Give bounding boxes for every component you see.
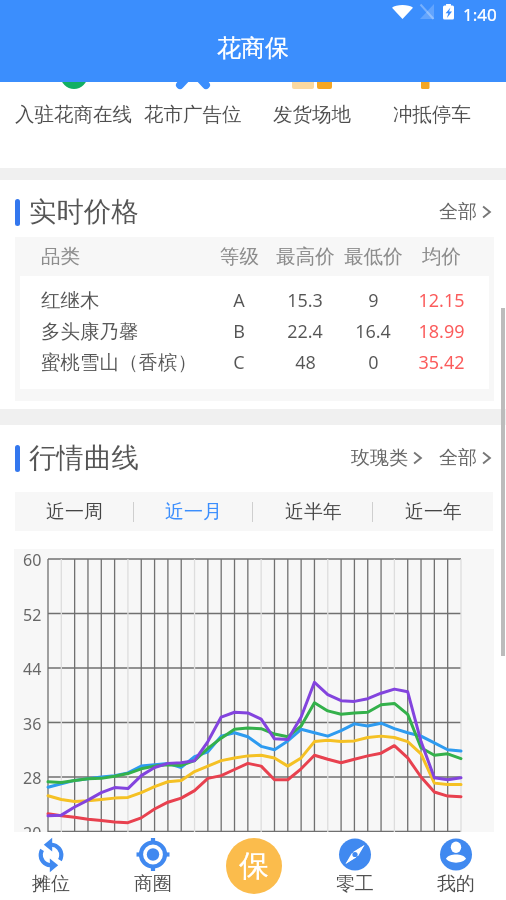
staticText: 最低价 <box>344 244 403 269</box>
staticText: 60 <box>23 549 42 569</box>
staticText: 均价 <box>422 244 461 269</box>
staticText: 红继木 <box>41 288 100 313</box>
staticText: 花商保 <box>217 33 289 63</box>
staticText: 22.4 <box>287 319 323 344</box>
button[interactable]: 近一周 <box>15 492 134 531</box>
button[interactable]: 入驻花商在线 <box>14 82 133 168</box>
button[interactable]: 玫瑰类 <box>351 440 422 476</box>
staticText: 近一年 <box>405 500 462 524</box>
staticText: 0 <box>368 350 379 375</box>
staticText: 近一月 <box>165 500 222 524</box>
button[interactable]: Gig work <box>304 832 405 900</box>
staticText: C <box>233 350 245 375</box>
button[interactable]: 全部 <box>439 194 491 230</box>
staticText: 保 <box>239 847 269 885</box>
staticText: 近一周 <box>46 500 103 524</box>
staticText: B <box>233 319 245 344</box>
staticText: 我的 <box>437 872 475 896</box>
staticText: 12.15 <box>418 288 465 313</box>
button[interactable]: 近一年 <box>373 492 493 531</box>
button[interactable]: 近半年 <box>253 492 373 531</box>
staticText: 等级 <box>220 244 259 269</box>
staticText: 多头康乃馨 <box>41 319 139 344</box>
staticText: A <box>233 288 245 313</box>
staticText: 48 <box>295 350 316 375</box>
staticText: 36 <box>23 713 42 733</box>
staticText: 玫瑰类 <box>351 446 408 470</box>
button[interactable]: 花市广告位 <box>133 82 252 168</box>
staticText: 近半年 <box>285 500 342 524</box>
button[interactable] <box>15 285 494 316</box>
staticText: 15.3 <box>287 288 323 313</box>
staticText: 1:40 <box>463 3 497 26</box>
button[interactable]: Business district <box>102 832 203 900</box>
staticText: 最高价 <box>276 244 335 269</box>
button[interactable]: 近一月 <box>134 492 253 531</box>
staticText: 全部 <box>439 200 477 224</box>
staticText: 35.42 <box>418 350 465 375</box>
button[interactable]: 发货场地 <box>252 82 372 168</box>
staticText: 花市广告位 <box>144 102 242 127</box>
staticText: 9 <box>368 288 379 313</box>
button[interactable]: Stalls <box>0 832 102 900</box>
button[interactable] <box>15 316 494 347</box>
staticText: 52 <box>23 604 42 624</box>
staticText: 零工 <box>336 872 374 896</box>
staticText: 商圈 <box>134 872 172 896</box>
staticText: 蜜桃雪山（香槟） <box>41 350 197 375</box>
staticText: 冲抵停车 <box>393 102 471 127</box>
staticText: 品类 <box>41 244 80 269</box>
staticText: 44 <box>23 658 42 678</box>
staticText: 16.4 <box>355 319 391 344</box>
staticText: 28 <box>23 767 42 787</box>
staticText: 行情曲线 <box>29 441 139 476</box>
staticText: 入驻花商在线 <box>15 102 132 127</box>
button[interactable] <box>15 347 494 378</box>
staticText: 实时价格 <box>29 195 139 230</box>
button[interactable]: 保 <box>226 838 282 894</box>
staticText: 发货场地 <box>273 102 351 127</box>
staticText: 20 <box>23 822 42 842</box>
button[interactable]: 全部 <box>439 440 491 476</box>
button[interactable]: 冲抵停车 <box>372 82 492 168</box>
staticText: 摊位 <box>32 872 70 896</box>
staticText: 18.99 <box>418 319 465 344</box>
staticText: 全部 <box>439 446 477 470</box>
button[interactable]: Profile <box>405 832 506 900</box>
